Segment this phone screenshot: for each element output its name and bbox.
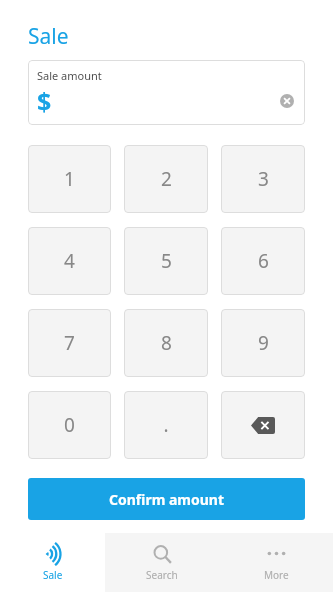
button[interactable]: Backspace (221, 391, 305, 459)
button[interactable]: Search (105, 533, 219, 592)
button[interactable]: Confirm amount (28, 478, 305, 520)
button[interactable]: Clear amount (280, 94, 294, 108)
staticText: Sale (43, 568, 63, 582)
staticText: 5 (161, 248, 172, 274)
staticText: Confirm amount (109, 490, 225, 509)
staticText: 1 (64, 166, 75, 192)
staticText: . (163, 412, 169, 438)
button[interactable]: . (124, 391, 208, 459)
staticText: Search (146, 568, 178, 582)
button[interactable]: 1 (28, 145, 111, 213)
staticText: 6 (258, 248, 269, 274)
button[interactable]: 0 (28, 391, 111, 459)
button[interactable]: More (219, 533, 333, 592)
button[interactable]: Sale amount (28, 60, 305, 125)
button[interactable]: Sale (0, 533, 105, 592)
staticText: More (264, 568, 289, 582)
staticText: 0 (64, 412, 75, 438)
button[interactable]: 6 (221, 227, 305, 295)
staticText: Sale amount (37, 68, 102, 83)
button[interactable]: 4 (28, 227, 111, 295)
staticText: $ (37, 84, 52, 118)
staticText: 3 (258, 166, 269, 192)
staticText: 8 (161, 330, 172, 356)
staticText: 4 (64, 248, 75, 274)
button[interactable]: 9 (221, 309, 305, 377)
staticText: 2 (161, 166, 172, 192)
button[interactable]: 3 (221, 145, 305, 213)
button[interactable]: 8 (124, 309, 208, 377)
staticText: Sale (28, 22, 69, 51)
staticText: 7 (64, 330, 75, 356)
button[interactable]: 2 (124, 145, 208, 213)
staticText: 9 (258, 330, 269, 356)
button[interactable]: 5 (124, 227, 208, 295)
button[interactable]: 7 (28, 309, 111, 377)
